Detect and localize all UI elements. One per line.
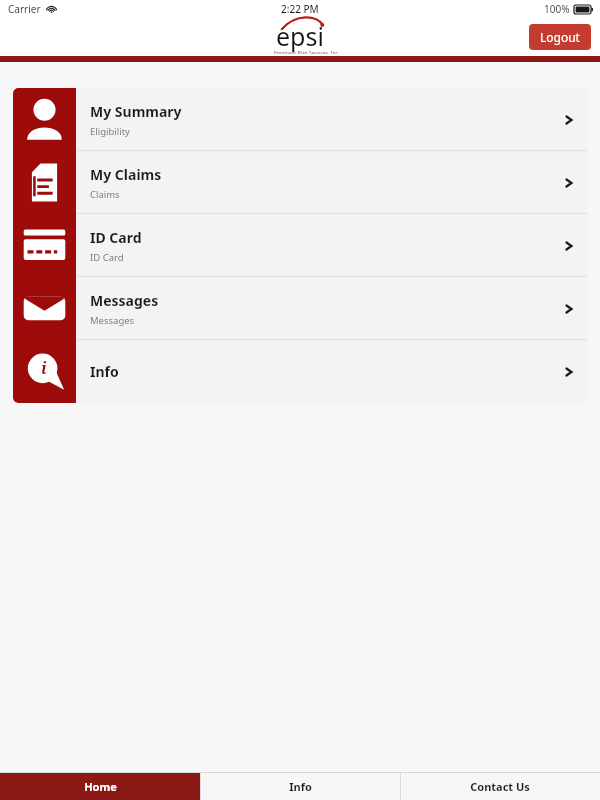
staticText: Messages xyxy=(90,291,159,310)
staticText: 100% xyxy=(544,2,570,16)
button[interactable]: Contact Us xyxy=(400,773,600,800)
staticText: Info xyxy=(289,779,312,794)
staticText: Home xyxy=(84,779,117,794)
button[interactable]: Logout xyxy=(529,24,591,50)
staticText: Employer Plan Services, Inc. xyxy=(274,50,340,54)
staticText: epsi xyxy=(276,19,324,53)
button[interactable]: Info xyxy=(200,773,400,800)
button[interactable]: Messages xyxy=(13,277,588,340)
staticText: 2:22 PM xyxy=(281,2,319,16)
staticText: ID Card xyxy=(90,228,142,247)
button[interactable]: i xyxy=(13,340,588,403)
button[interactable]: My Claims xyxy=(13,151,588,214)
staticText: ID Card xyxy=(90,251,124,264)
staticText: Messages xyxy=(90,314,135,327)
staticText: My Claims xyxy=(90,165,162,184)
staticText: Claims xyxy=(90,188,120,201)
staticText: Logout xyxy=(540,29,580,45)
button[interactable]: My Summary xyxy=(13,88,588,151)
button[interactable]: Home xyxy=(0,773,200,800)
staticText: i xyxy=(41,357,47,379)
staticText: Carrier xyxy=(8,2,41,16)
staticText: Eligibility xyxy=(90,125,130,138)
staticText: Info xyxy=(90,362,119,381)
staticText: Contact Us xyxy=(470,779,530,794)
button[interactable]: ID Card xyxy=(13,214,588,277)
staticText: My Summary xyxy=(90,102,182,121)
